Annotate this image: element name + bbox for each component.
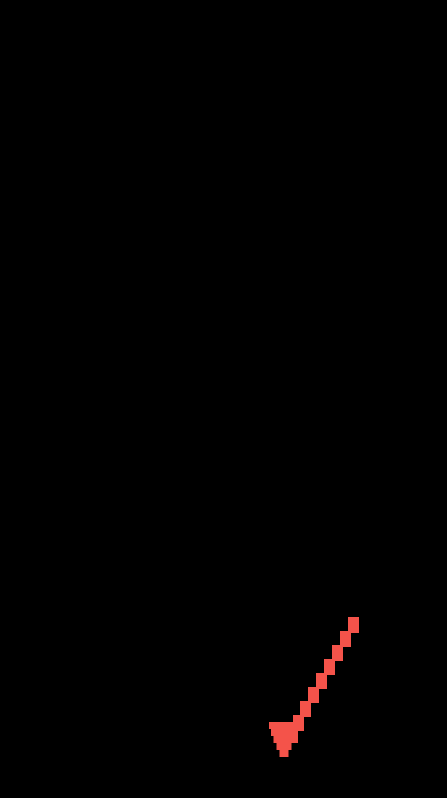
button[interactable]: 学习记录 xyxy=(149,621,298,724)
button[interactable]: 过关宝箱 xyxy=(223,739,335,797)
button[interactable]: 随机十题 xyxy=(299,621,447,724)
button[interactable]: 我的收藏 xyxy=(299,517,447,620)
